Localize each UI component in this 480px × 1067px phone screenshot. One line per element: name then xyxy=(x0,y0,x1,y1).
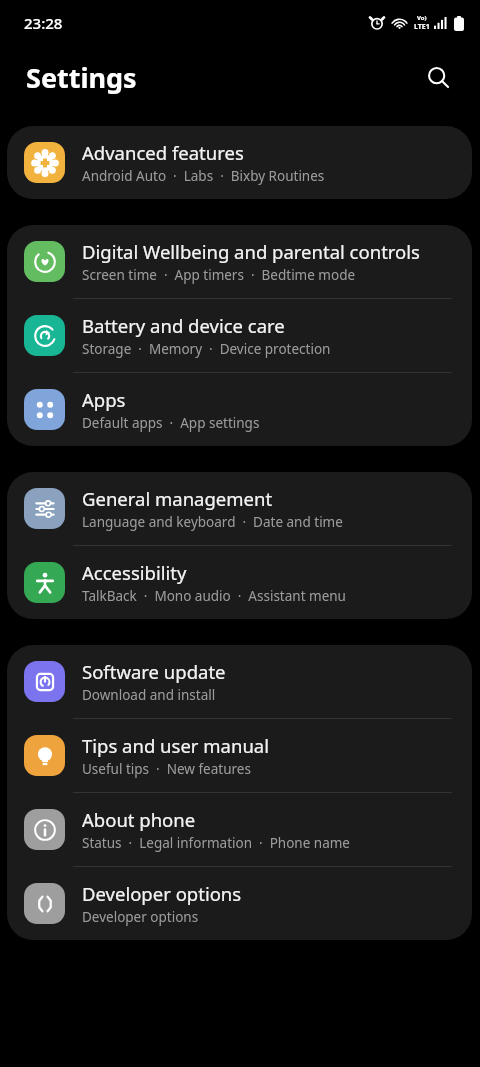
button[interactable]: About phone xyxy=(7,793,472,866)
staticText: Settings xyxy=(26,59,137,96)
staticText: Developer options xyxy=(82,908,199,926)
button[interactable]: Software update xyxy=(7,645,472,718)
staticText: Status · Legal information · Phone name xyxy=(82,834,350,852)
button[interactable]: Developer options xyxy=(7,867,472,940)
staticText: Storage · Memory · Device protection xyxy=(82,340,331,358)
staticText: Software update xyxy=(82,659,226,684)
staticText: Language and keyboard · Date and time xyxy=(82,513,343,531)
staticText: Developer options xyxy=(82,881,242,906)
staticText: Useful tips · New features xyxy=(82,760,251,778)
staticText: Default apps · App settings xyxy=(82,414,260,432)
staticText: Digital Wellbeing and parental controls xyxy=(82,239,420,264)
button[interactable]: Search xyxy=(416,55,460,99)
staticText: Battery and device care xyxy=(82,313,285,338)
staticText: Vo) xyxy=(417,14,427,22)
staticText: Screen time · App timers · Bedtime mode xyxy=(82,266,356,284)
staticText: 23:28 xyxy=(24,13,63,33)
button[interactable]: Battery and device care xyxy=(7,299,472,372)
staticText: Android Auto · Labs · Bixby Routines xyxy=(82,167,325,185)
staticText: About phone xyxy=(82,807,196,832)
staticText: Tips and user manual xyxy=(82,733,269,758)
button[interactable]: Digital Wellbeing and parental controls xyxy=(7,225,472,298)
staticText: TalkBack · Mono audio · Assistant menu xyxy=(82,587,346,605)
button[interactable]: Tips and user manual xyxy=(7,719,472,792)
button[interactable]: Apps xyxy=(7,373,472,446)
button[interactable]: Accessibility xyxy=(7,546,472,619)
staticText: Download and install xyxy=(82,686,216,704)
staticText: General management xyxy=(82,486,273,511)
staticText: Accessibility xyxy=(82,560,187,585)
button[interactable]: General management xyxy=(7,472,472,545)
button[interactable]: Advanced features xyxy=(7,126,472,199)
staticText: LTE1 xyxy=(414,22,430,32)
staticText: Apps xyxy=(82,387,126,412)
staticText: Advanced features xyxy=(82,140,244,165)
